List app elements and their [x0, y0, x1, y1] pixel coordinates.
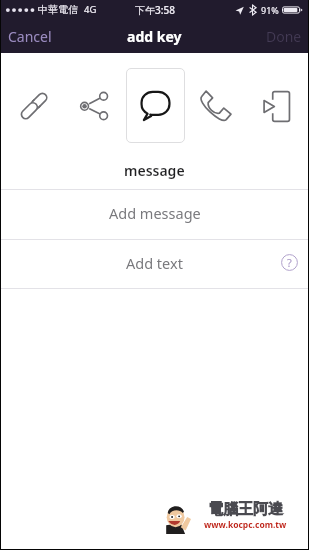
staticText: add key [127, 27, 182, 46]
button[interactable]: Link [1, 53, 63, 158]
button[interactable]: message [1, 158, 308, 189]
button[interactable]: Video [247, 53, 308, 158]
staticText: 下午3:58 [135, 3, 175, 17]
staticText: message [124, 161, 185, 180]
button[interactable]: Add message [1, 190, 308, 239]
staticText: 91% [261, 4, 279, 16]
button[interactable]: Done [254, 19, 308, 53]
staticText: www.kocpc.com.tw [204, 519, 287, 531]
button[interactable]: Call [186, 53, 247, 158]
staticText: 中華電信 [38, 3, 78, 16]
button[interactable]: Help [277, 250, 301, 274]
button[interactable]: Message [125, 53, 186, 158]
button[interactable]: Cancel [1, 19, 64, 53]
staticText: Cancel [8, 27, 52, 45]
staticText: 電腦王阿達 [208, 500, 283, 519]
staticText: Add message [109, 203, 201, 223]
button[interactable]: Add text [1, 240, 308, 288]
staticText: 4G [84, 3, 97, 16]
staticText: ? [287, 255, 292, 270]
staticText: Add text [126, 253, 183, 273]
staticText: Done [266, 27, 302, 45]
button[interactable]: Share [63, 53, 125, 158]
